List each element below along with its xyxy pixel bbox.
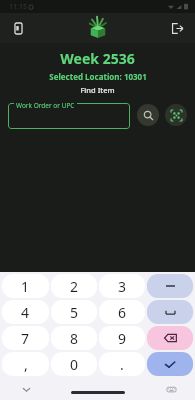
button[interactable]: 1: [2, 274, 49, 298]
staticText: Work Order or UPC: [16, 101, 75, 110]
staticText: 2: [70, 277, 79, 296]
staticText: 9: [118, 329, 127, 348]
staticText: Selected Location: 10301: [49, 71, 147, 82]
staticText: 1: [21, 277, 30, 296]
button[interactable]: 6: [99, 300, 145, 324]
button[interactable]: dash: [147, 274, 193, 298]
button[interactable]: space: [147, 300, 193, 324]
button[interactable]: 5: [51, 300, 97, 324]
button[interactable]: .: [99, 352, 145, 376]
button[interactable]: 2: [51, 274, 97, 298]
staticText: 4: [21, 303, 30, 322]
button[interactable]: 9: [99, 326, 145, 350]
button[interactable]: Search: [137, 104, 159, 126]
button[interactable]: Logout: [164, 15, 190, 41]
staticText: 5: [70, 303, 79, 322]
button[interactable]: backspace: [147, 326, 193, 350]
button[interactable]: ,: [2, 352, 49, 376]
button[interactable]: [8, 103, 130, 129]
button[interactable]: Device: [5, 15, 31, 41]
button[interactable]: Scan barcode: [165, 104, 187, 126]
button[interactable]: 7: [2, 326, 49, 350]
staticText: Week 2536: [60, 49, 135, 68]
staticText: 6: [118, 303, 127, 322]
staticText: Find Item: [80, 85, 115, 95]
button[interactable]: 0: [51, 352, 97, 376]
button[interactable]: 8: [51, 326, 97, 350]
staticText: ,: [24, 355, 28, 374]
button[interactable]: 3: [99, 274, 145, 298]
staticText: .: [120, 355, 124, 374]
button[interactable]: enter: [147, 352, 193, 376]
staticText: 11:15: [9, 2, 27, 12]
button[interactable]: Hide keyboard: [18, 381, 34, 397]
staticText: 8: [70, 329, 79, 348]
staticText: 7: [21, 329, 30, 348]
staticText: 0: [70, 355, 79, 374]
button[interactable]: 4: [2, 300, 49, 324]
staticText: 3: [118, 277, 127, 296]
button[interactable]: Switch keyboard: [163, 381, 179, 397]
